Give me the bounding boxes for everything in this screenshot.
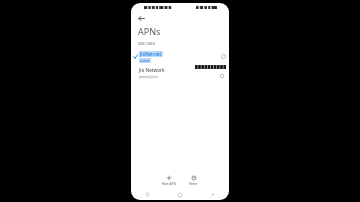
button[interactable]: Recent apps (131, 189, 163, 200)
staticText: Jio Network (139, 67, 165, 73)
button[interactable]: JioNet-net (131, 49, 229, 64)
staticText: APNs (138, 25, 161, 37)
staticText: jionet (140, 58, 150, 63)
button[interactable]: Reset (186, 174, 201, 187)
staticText: SIM CARD (138, 41, 156, 46)
staticText: jionet.jio.in (139, 74, 158, 79)
button[interactable]: New APN (159, 174, 179, 187)
button[interactable]: Back (196, 189, 229, 200)
staticText: Reset (189, 182, 198, 186)
button[interactable]: Navigate up (135, 12, 147, 24)
button[interactable]: Home (163, 189, 196, 200)
staticText: JioNet-net (140, 51, 162, 57)
button[interactable]: Edit APN (218, 72, 226, 80)
button[interactable]: Jio Network (131, 64, 229, 81)
button[interactable]: Edit APN (217, 49, 229, 64)
staticText: New APN (162, 182, 176, 186)
